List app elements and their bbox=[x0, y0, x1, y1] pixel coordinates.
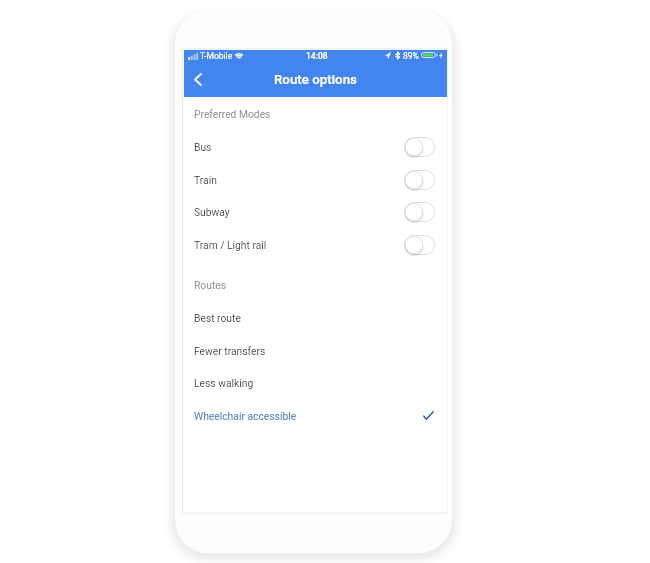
button[interactable]: Train bbox=[184, 163, 447, 196]
button[interactable]: Tram / Light rail bbox=[184, 228, 447, 261]
button[interactable]: Best route bbox=[184, 301, 447, 334]
staticText: Less walking bbox=[194, 377, 254, 389]
staticText: Subway bbox=[194, 206, 230, 218]
staticText: 89% bbox=[403, 51, 419, 61]
staticText: Wheelchair accessible bbox=[194, 410, 297, 422]
button[interactable]: Less walking bbox=[184, 366, 447, 399]
button[interactable]: Toggle bbox=[404, 170, 435, 190]
staticText: 14:08 bbox=[306, 51, 328, 61]
staticText: Routes bbox=[194, 279, 227, 291]
staticText: Bus bbox=[194, 141, 212, 153]
button[interactable]: Bus bbox=[184, 130, 447, 163]
button[interactable]: Subway bbox=[184, 195, 447, 228]
button[interactable]: Toggle bbox=[404, 137, 435, 157]
button[interactable]: Toggle bbox=[404, 202, 435, 222]
button[interactable]: Fewer transfers bbox=[184, 334, 447, 367]
staticText: Tram / Light rail bbox=[194, 239, 267, 251]
staticText: T-Mobile bbox=[200, 51, 233, 61]
staticText: Train bbox=[194, 174, 217, 186]
button[interactable]: Back bbox=[189, 66, 207, 92]
button[interactable]: Wheelchair accessible bbox=[184, 399, 447, 432]
staticText: Best route bbox=[194, 312, 241, 324]
staticText: Preferred Modes bbox=[194, 108, 271, 120]
staticText: Route options bbox=[274, 72, 357, 88]
button[interactable]: Toggle bbox=[404, 235, 435, 255]
staticText: Fewer transfers bbox=[194, 345, 266, 357]
